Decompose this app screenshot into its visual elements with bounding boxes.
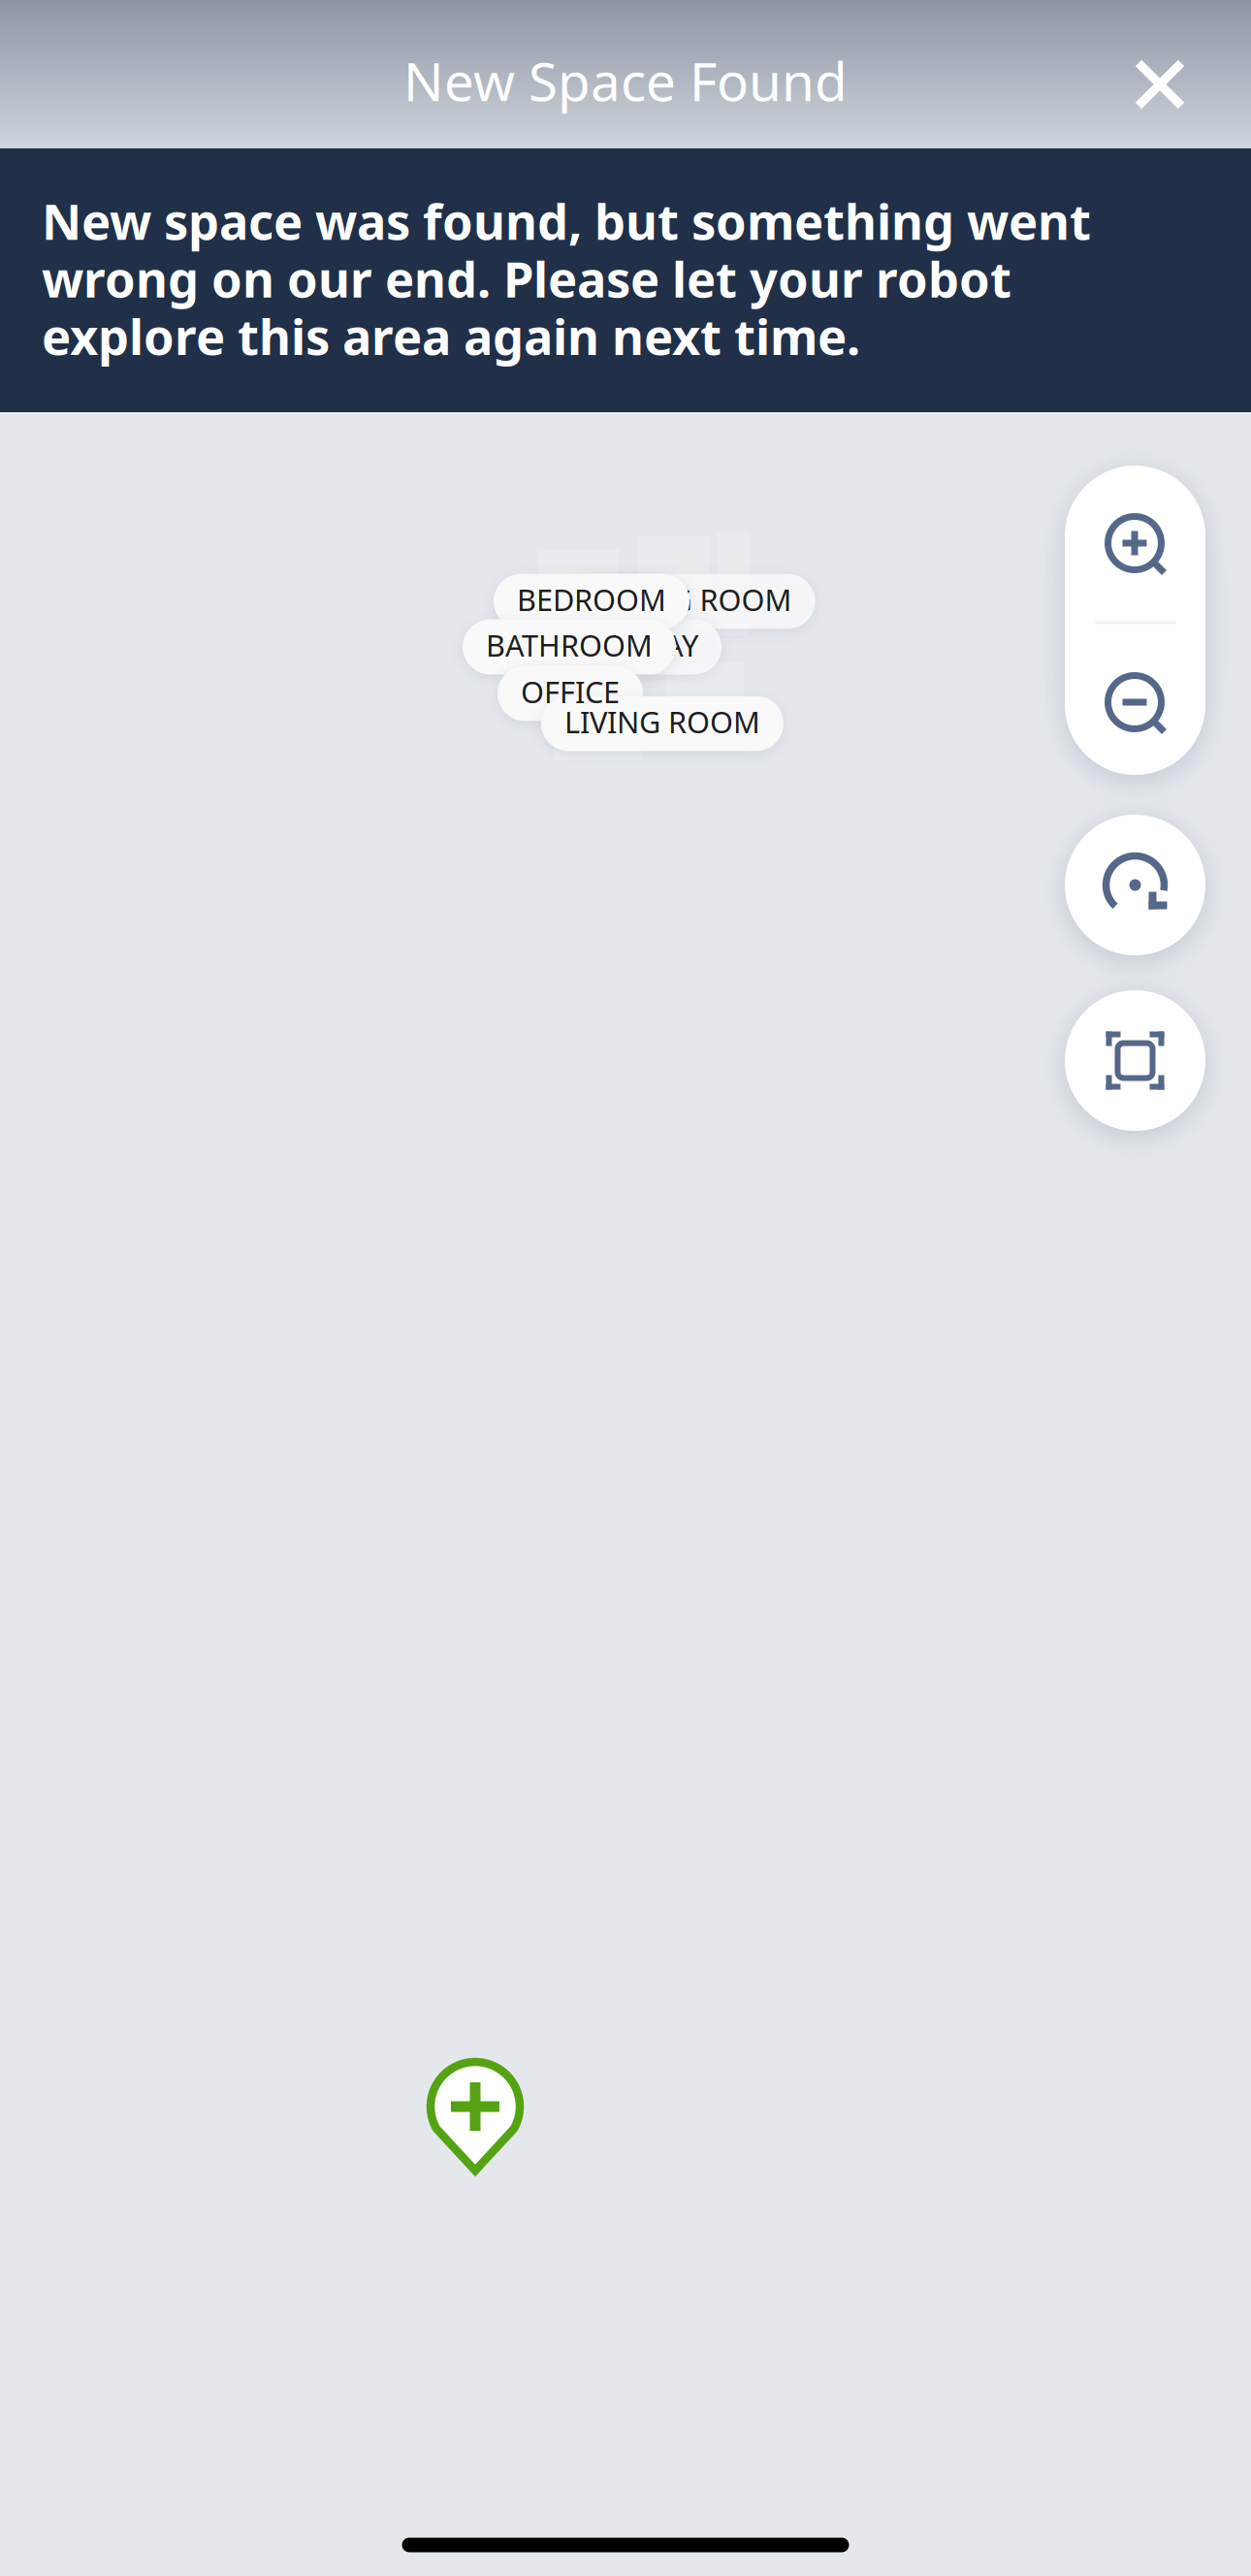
staticText: BEDROOM [517, 580, 666, 619]
button[interactable]: Fit map to screen [1065, 990, 1205, 1131]
staticText: HALLWAY [566, 625, 698, 665]
button[interactable]: Close [1107, 31, 1213, 138]
staticText: LIVING ROOM [564, 702, 760, 741]
staticText: New space was found, but something went … [42, 192, 1091, 365]
staticText: New Space Found [403, 45, 848, 116]
staticText: OFFICE [521, 672, 620, 711]
button[interactable]: Zoom in [1067, 467, 1208, 625]
staticText: LIVING ROOM [564, 702, 760, 741]
staticText: HALLWAY [566, 625, 698, 665]
button[interactable]: Zoom out [1067, 629, 1208, 781]
button[interactable]: Recenter map [1065, 815, 1205, 955]
staticText: BATHROOM [486, 625, 653, 665]
staticText: BEDROOM [517, 580, 666, 619]
staticText: BATHROOM [486, 625, 653, 665]
button[interactable]: Add new space [422, 2053, 529, 2179]
staticText: DINING ROOM [585, 580, 792, 619]
staticText: DINING ROOM [585, 580, 792, 619]
staticText: OFFICE [521, 672, 620, 711]
